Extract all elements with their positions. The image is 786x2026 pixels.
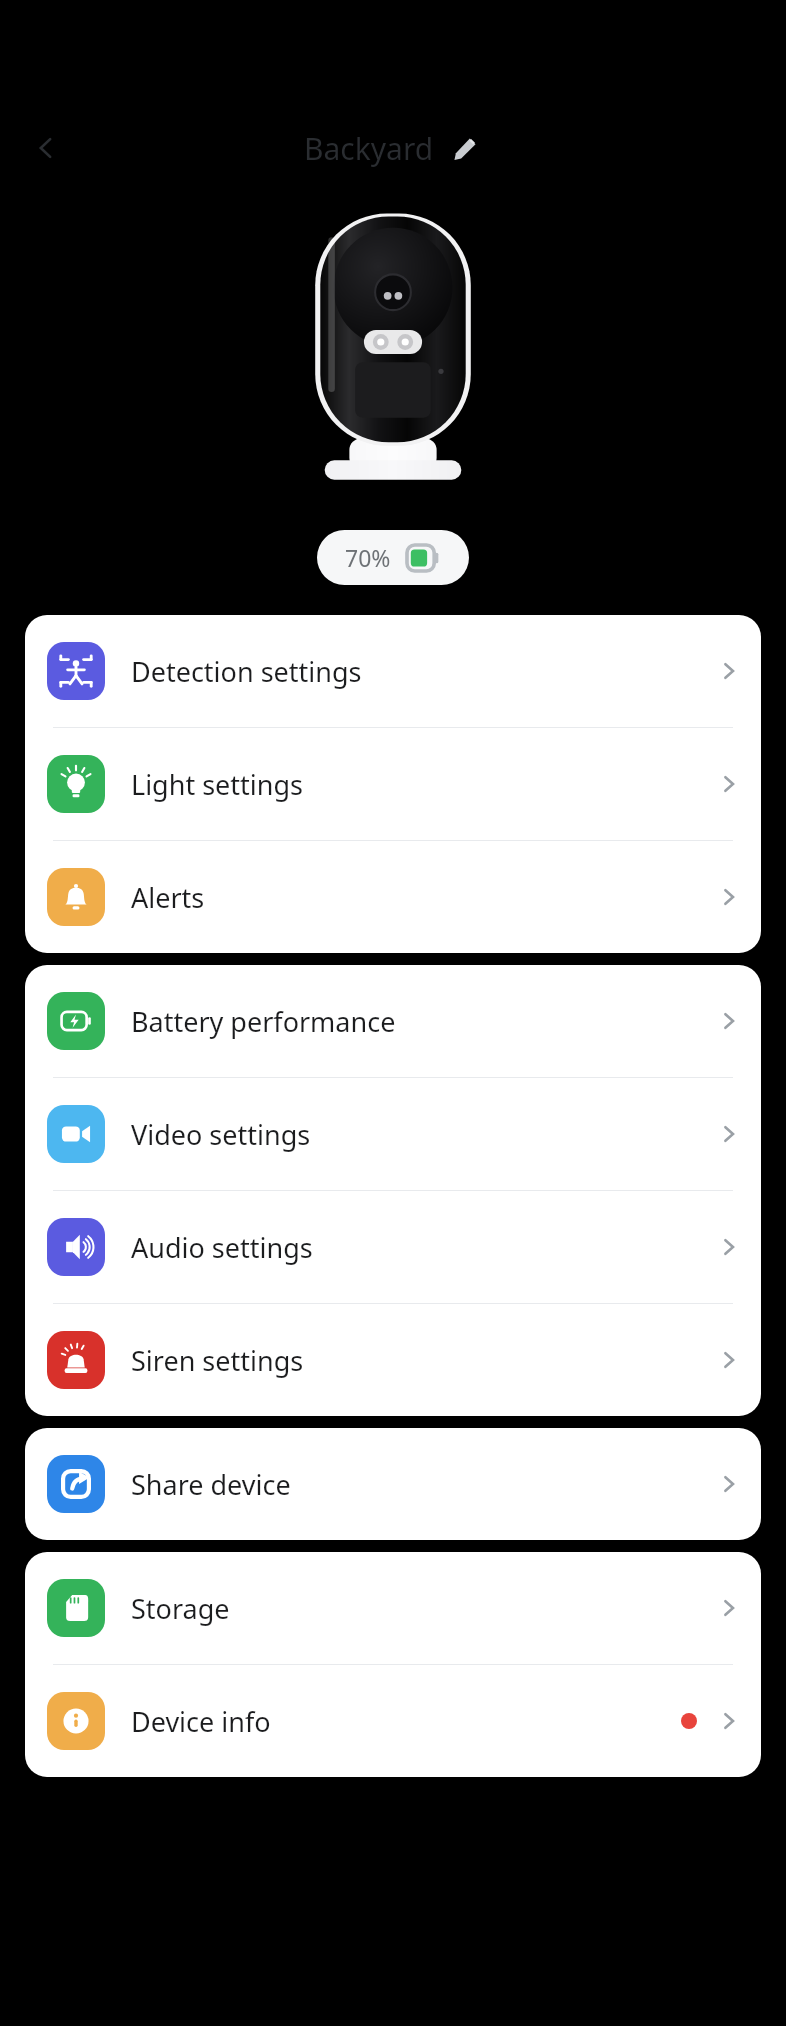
button[interactable]: Back [20, 122, 72, 174]
button[interactable]: Video settings [25, 1078, 761, 1190]
button[interactable]: Device info [25, 1665, 761, 1777]
staticText: Alerts [131, 879, 205, 916]
button[interactable]: 70% [317, 530, 469, 585]
button[interactable]: Light settings [25, 728, 761, 840]
staticText: Storage [131, 1590, 230, 1627]
button[interactable]: Detection settings [25, 615, 761, 727]
staticText: Siren settings [131, 1342, 304, 1379]
staticText: Video settings [131, 1116, 311, 1153]
button[interactable]: Siren settings [25, 1304, 761, 1416]
staticText: Share device [131, 1466, 291, 1503]
staticText: Battery performance [131, 1003, 396, 1040]
button[interactable]: Alerts [25, 841, 761, 953]
button[interactable]: Edit name [448, 132, 482, 166]
staticText: Audio settings [131, 1229, 313, 1266]
staticText: 70% [345, 542, 391, 573]
staticText: Backyard [304, 128, 434, 169]
staticText: Detection settings [131, 653, 362, 690]
staticText: Light settings [131, 766, 304, 803]
staticText: Device info [131, 1703, 271, 1740]
button[interactable]: Battery performance [25, 965, 761, 1077]
button[interactable]: Storage [25, 1552, 761, 1664]
button[interactable]: Share device [25, 1428, 761, 1540]
button[interactable]: Audio settings [25, 1191, 761, 1303]
